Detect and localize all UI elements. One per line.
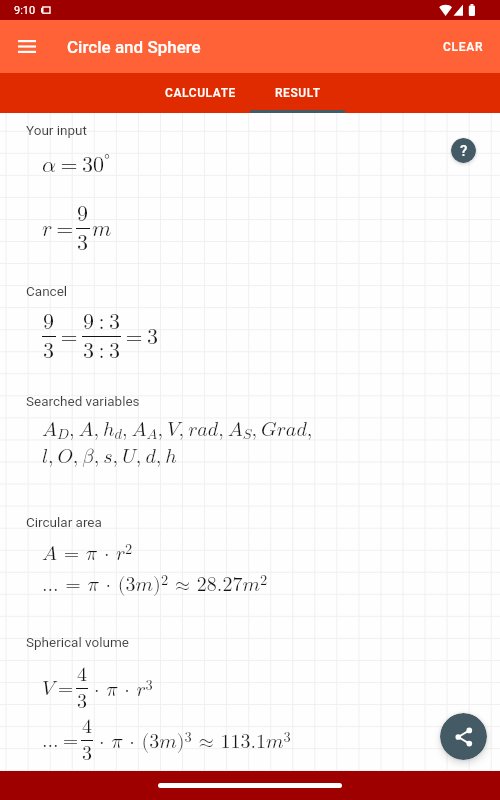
button[interactable]: Share (440, 713, 487, 760)
button[interactable]: CLEAR (427, 20, 500, 73)
staticText: 𝛼 = 30° (42, 152, 110, 176)
staticText: 3 (77, 692, 87, 712)
staticText: RESULT (275, 86, 321, 100)
staticText: · 𝜋 · (3𝑚)3 ≈ 113.1𝑚3 (95, 730, 291, 752)
staticText: 𝐴 = 𝜋 · 𝑟2 (42, 542, 133, 564)
staticText: 3 (43, 340, 55, 362)
staticText: Your input (26, 122, 87, 138)
staticText: 3 (77, 232, 89, 254)
staticText: CLEAR (443, 40, 484, 54)
button[interactable]: CALCULATE (150, 73, 250, 113)
staticText: 3 (82, 744, 92, 764)
staticText: 4 (82, 717, 92, 737)
staticText: = 3 (121, 326, 158, 348)
staticText: ... = (42, 731, 79, 751)
staticText: 𝑙, 𝑂, 𝛽, 𝑠, 𝑈, 𝑑, ℎ (42, 447, 177, 467)
staticText: = (56, 326, 82, 348)
staticText: Circular area (26, 514, 102, 530)
staticText: · 𝜋 · 𝑟3 (90, 678, 153, 700)
staticText: 𝑚 (92, 218, 112, 240)
staticText: CALCULATE (165, 86, 236, 100)
button[interactable]: RESULT (250, 73, 345, 113)
staticText: 3 : 3 (83, 340, 120, 362)
staticText: ... = 𝜋 · (3𝑚)2 ≈ 28.27𝑚2 (42, 573, 268, 595)
staticText: 𝑟 = (42, 218, 74, 240)
button[interactable]: Help (451, 138, 476, 163)
staticText: 𝑉 = (42, 679, 74, 699)
button[interactable]: Open navigation menu (0, 20, 53, 73)
staticText: 4 (77, 665, 87, 685)
staticText: 9 (43, 311, 55, 333)
staticText: 9 : 3 (83, 311, 120, 333)
staticText: Spherical volume (26, 634, 129, 650)
staticText: Circle and Sphere (67, 37, 201, 57)
staticText: 9:10 (14, 4, 36, 17)
staticText: 9 (77, 203, 89, 225)
staticText: 𝐴𝐷, 𝐴, ℎ𝑑, 𝐴𝐴, 𝑉, 𝑟𝑎𝑑, 𝐴𝑆, 𝐺𝑟𝑎𝑑, (42, 420, 313, 442)
staticText: Cancel (26, 283, 68, 299)
staticText: Searched variables (26, 393, 140, 409)
staticText: ? (460, 142, 468, 160)
